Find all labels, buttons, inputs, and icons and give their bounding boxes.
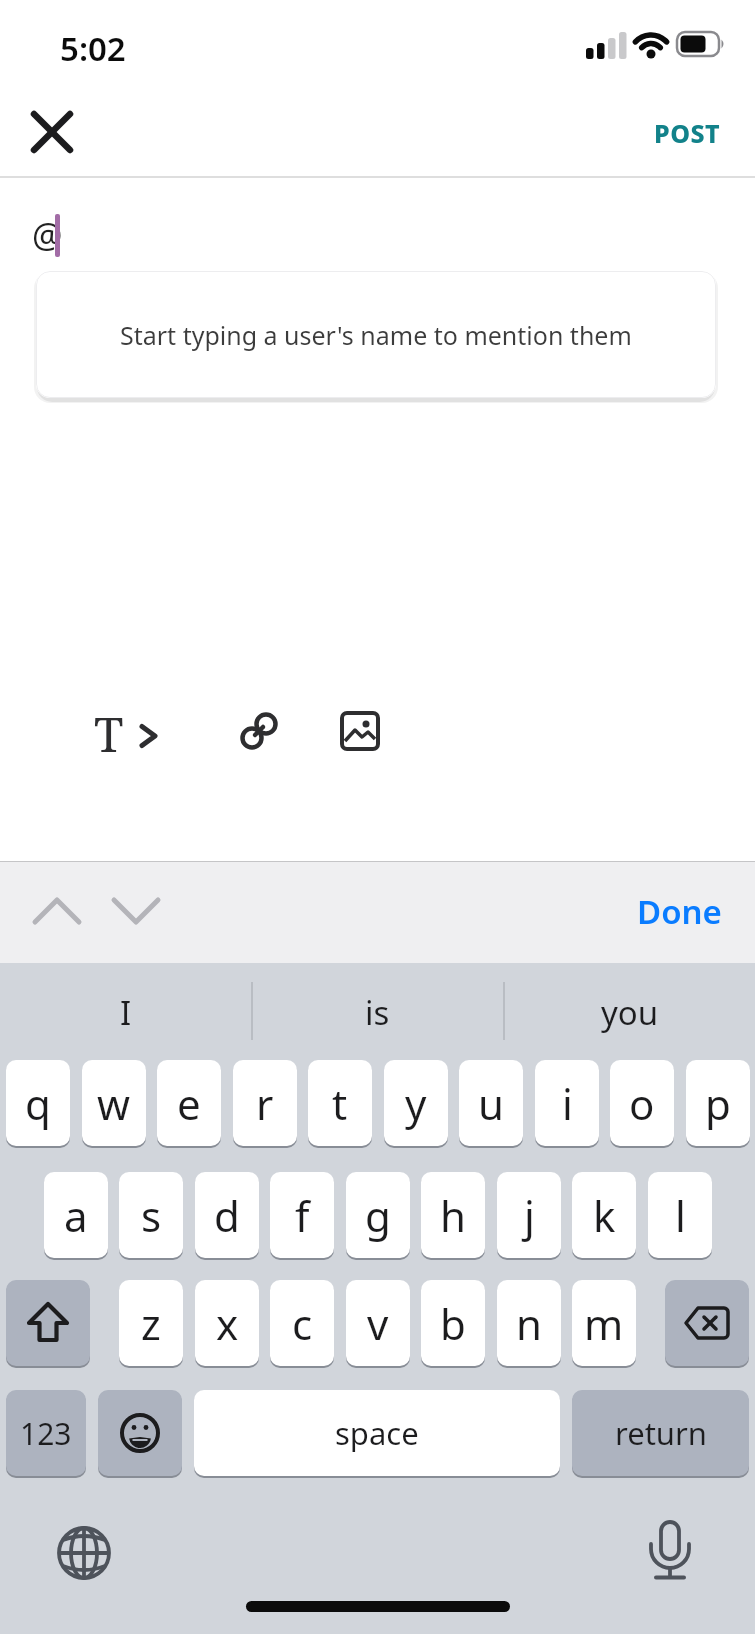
button[interactable]: w <box>82 1060 146 1146</box>
button[interactable] <box>228 700 290 762</box>
button[interactable]: I <box>0 986 251 1038</box>
staticText: T <box>94 701 124 766</box>
button[interactable]: r <box>233 1060 297 1146</box>
staticText: k <box>593 1187 616 1244</box>
button[interactable]: POST <box>654 116 721 150</box>
button[interactable]: y <box>384 1060 448 1146</box>
button[interactable]: t <box>308 1060 372 1146</box>
staticText: b <box>440 1295 466 1352</box>
button[interactable] <box>665 1280 749 1366</box>
staticText: q <box>25 1075 51 1132</box>
staticText: space <box>335 1412 419 1454</box>
staticText: h <box>440 1187 466 1244</box>
button[interactable]: return <box>572 1390 749 1476</box>
button[interactable]: e <box>157 1060 221 1146</box>
staticText: d <box>214 1187 240 1244</box>
button[interactable]: v <box>346 1280 410 1366</box>
staticText: n <box>516 1295 542 1352</box>
staticText: Start typing a user's name to mention th… <box>120 318 632 352</box>
button[interactable]: o <box>610 1060 674 1146</box>
staticText: @ <box>32 212 63 258</box>
button[interactable]: T <box>80 700 175 766</box>
button[interactable]: c <box>270 1280 334 1366</box>
staticText: r <box>256 1075 274 1132</box>
button[interactable]: a <box>44 1172 108 1258</box>
staticText: l <box>675 1187 686 1244</box>
staticText: t <box>332 1075 348 1132</box>
button[interactable]: p <box>686 1060 750 1146</box>
staticText: v <box>367 1295 389 1352</box>
staticText: f <box>295 1187 310 1244</box>
staticText: c <box>292 1295 313 1352</box>
button[interactable]: space <box>194 1390 560 1476</box>
staticText: j <box>524 1187 535 1244</box>
button[interactable] <box>640 1516 700 1586</box>
staticText: i <box>562 1075 573 1132</box>
button[interactable] <box>105 880 167 942</box>
button[interactable]: k <box>572 1172 636 1258</box>
button[interactable]: f <box>270 1172 334 1258</box>
staticText: p <box>705 1075 731 1132</box>
staticText: you <box>601 990 659 1035</box>
staticText: m <box>584 1295 624 1352</box>
staticText: is <box>365 990 390 1035</box>
button[interactable]: z <box>119 1280 183 1366</box>
staticText: 123 <box>20 1413 72 1454</box>
button[interactable] <box>26 880 88 942</box>
button[interactable]: g <box>346 1172 410 1258</box>
staticText: o <box>629 1075 655 1132</box>
staticText: I <box>120 990 132 1035</box>
button[interactable]: is <box>252 986 503 1038</box>
button[interactable]: 123 <box>6 1390 86 1476</box>
button[interactable]: n <box>497 1280 561 1366</box>
button[interactable]: you <box>504 986 755 1038</box>
staticText: Done <box>637 889 722 934</box>
button[interactable] <box>6 1280 90 1366</box>
button[interactable]: d <box>195 1172 259 1258</box>
button[interactable]: Done <box>637 889 722 934</box>
staticText: y <box>405 1075 427 1132</box>
button[interactable]: i <box>535 1060 599 1146</box>
button[interactable]: q <box>6 1060 70 1146</box>
staticText: g <box>365 1187 391 1244</box>
button[interactable]: j <box>497 1172 561 1258</box>
button[interactable]: s <box>119 1172 183 1258</box>
button[interactable] <box>98 1390 182 1476</box>
staticText: POST <box>654 116 721 150</box>
button[interactable]: b <box>421 1280 485 1366</box>
staticText: x <box>216 1295 239 1352</box>
button[interactable] <box>330 700 390 762</box>
staticText: e <box>177 1075 201 1132</box>
staticText: u <box>478 1075 504 1132</box>
button[interactable] <box>52 1521 116 1585</box>
staticText: z <box>141 1295 161 1352</box>
button[interactable]: h <box>421 1172 485 1258</box>
button[interactable]: x <box>195 1280 259 1366</box>
staticText: s <box>141 1187 162 1244</box>
staticText: a <box>64 1187 88 1244</box>
button[interactable]: l <box>648 1172 712 1258</box>
button[interactable] <box>22 102 82 162</box>
staticText: 5:02 <box>60 26 126 71</box>
button[interactable]: m <box>572 1280 636 1366</box>
staticText: w <box>97 1075 131 1132</box>
button[interactable]: u <box>459 1060 523 1146</box>
staticText: return <box>615 1412 707 1454</box>
